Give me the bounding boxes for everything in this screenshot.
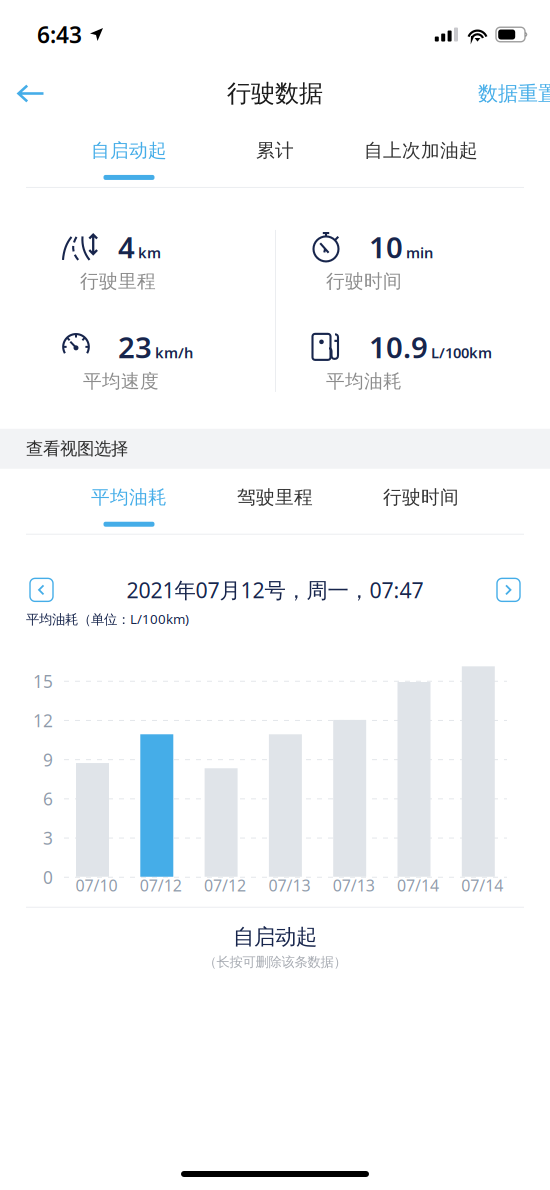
staticText: 平均油耗: [91, 486, 167, 509]
staticText: 自上次加油起: [364, 139, 478, 162]
staticText: 数据重置: [478, 81, 550, 106]
staticText: 07/12: [204, 875, 246, 896]
staticText: 15: [33, 670, 53, 693]
staticText: （长按可删除该条数据）: [203, 954, 346, 970]
staticText: 07/14: [397, 875, 439, 896]
button[interactable]: 平均油耗: [56, 466, 202, 534]
staticText: 平均油耗（单位：L/100km): [26, 610, 189, 628]
button[interactable]: 自启动起: [56, 119, 202, 187]
staticText: 驾驶里程: [237, 486, 313, 509]
staticText: 12: [33, 709, 53, 732]
staticText: 0: [43, 866, 53, 889]
staticText: 07/12: [140, 875, 182, 896]
button[interactable]: 返回: [7, 71, 55, 115]
staticText: 自启动起: [233, 924, 317, 950]
staticText: 行驶时间: [326, 270, 402, 293]
staticText: km/h: [155, 343, 193, 362]
staticText: 查看视图选择: [26, 438, 128, 459]
button[interactable]: 自上次加油起: [348, 119, 494, 187]
staticText: 07/13: [333, 875, 375, 896]
staticText: 6:43: [37, 19, 82, 49]
staticText: L/100km: [431, 343, 492, 362]
staticText: 2021年07月12号，周一，07:47: [126, 576, 423, 604]
staticText: 累计: [256, 139, 294, 162]
staticText: 10: [369, 227, 403, 266]
staticText: 9: [43, 748, 53, 771]
staticText: 行驶时间: [383, 486, 459, 509]
staticText: 07/14: [461, 875, 503, 896]
staticText: km: [138, 243, 161, 262]
staticText: 平均油耗: [326, 370, 402, 393]
button[interactable]: 下一条: [497, 578, 520, 601]
staticText: 4: [118, 227, 135, 266]
button[interactable]: 上一条: [30, 578, 53, 601]
staticText: 自启动起: [91, 139, 167, 162]
staticText: 平均速度: [83, 370, 159, 393]
staticText: min: [406, 243, 433, 262]
button[interactable]: 累计: [202, 119, 348, 187]
button[interactable]: 数据重置: [478, 71, 550, 115]
staticText: 07/13: [268, 875, 310, 896]
staticText: 行驶里程: [80, 270, 156, 293]
staticText: 23: [118, 327, 152, 366]
staticText: 3: [43, 826, 53, 849]
staticText: 10.9: [369, 327, 428, 366]
staticText: 07/10: [75, 875, 117, 896]
button[interactable]: 驾驶里程: [202, 466, 348, 534]
button[interactable]: 行驶时间: [348, 466, 494, 534]
staticText: 行驶数据: [227, 79, 323, 108]
staticText: 6: [43, 787, 53, 810]
